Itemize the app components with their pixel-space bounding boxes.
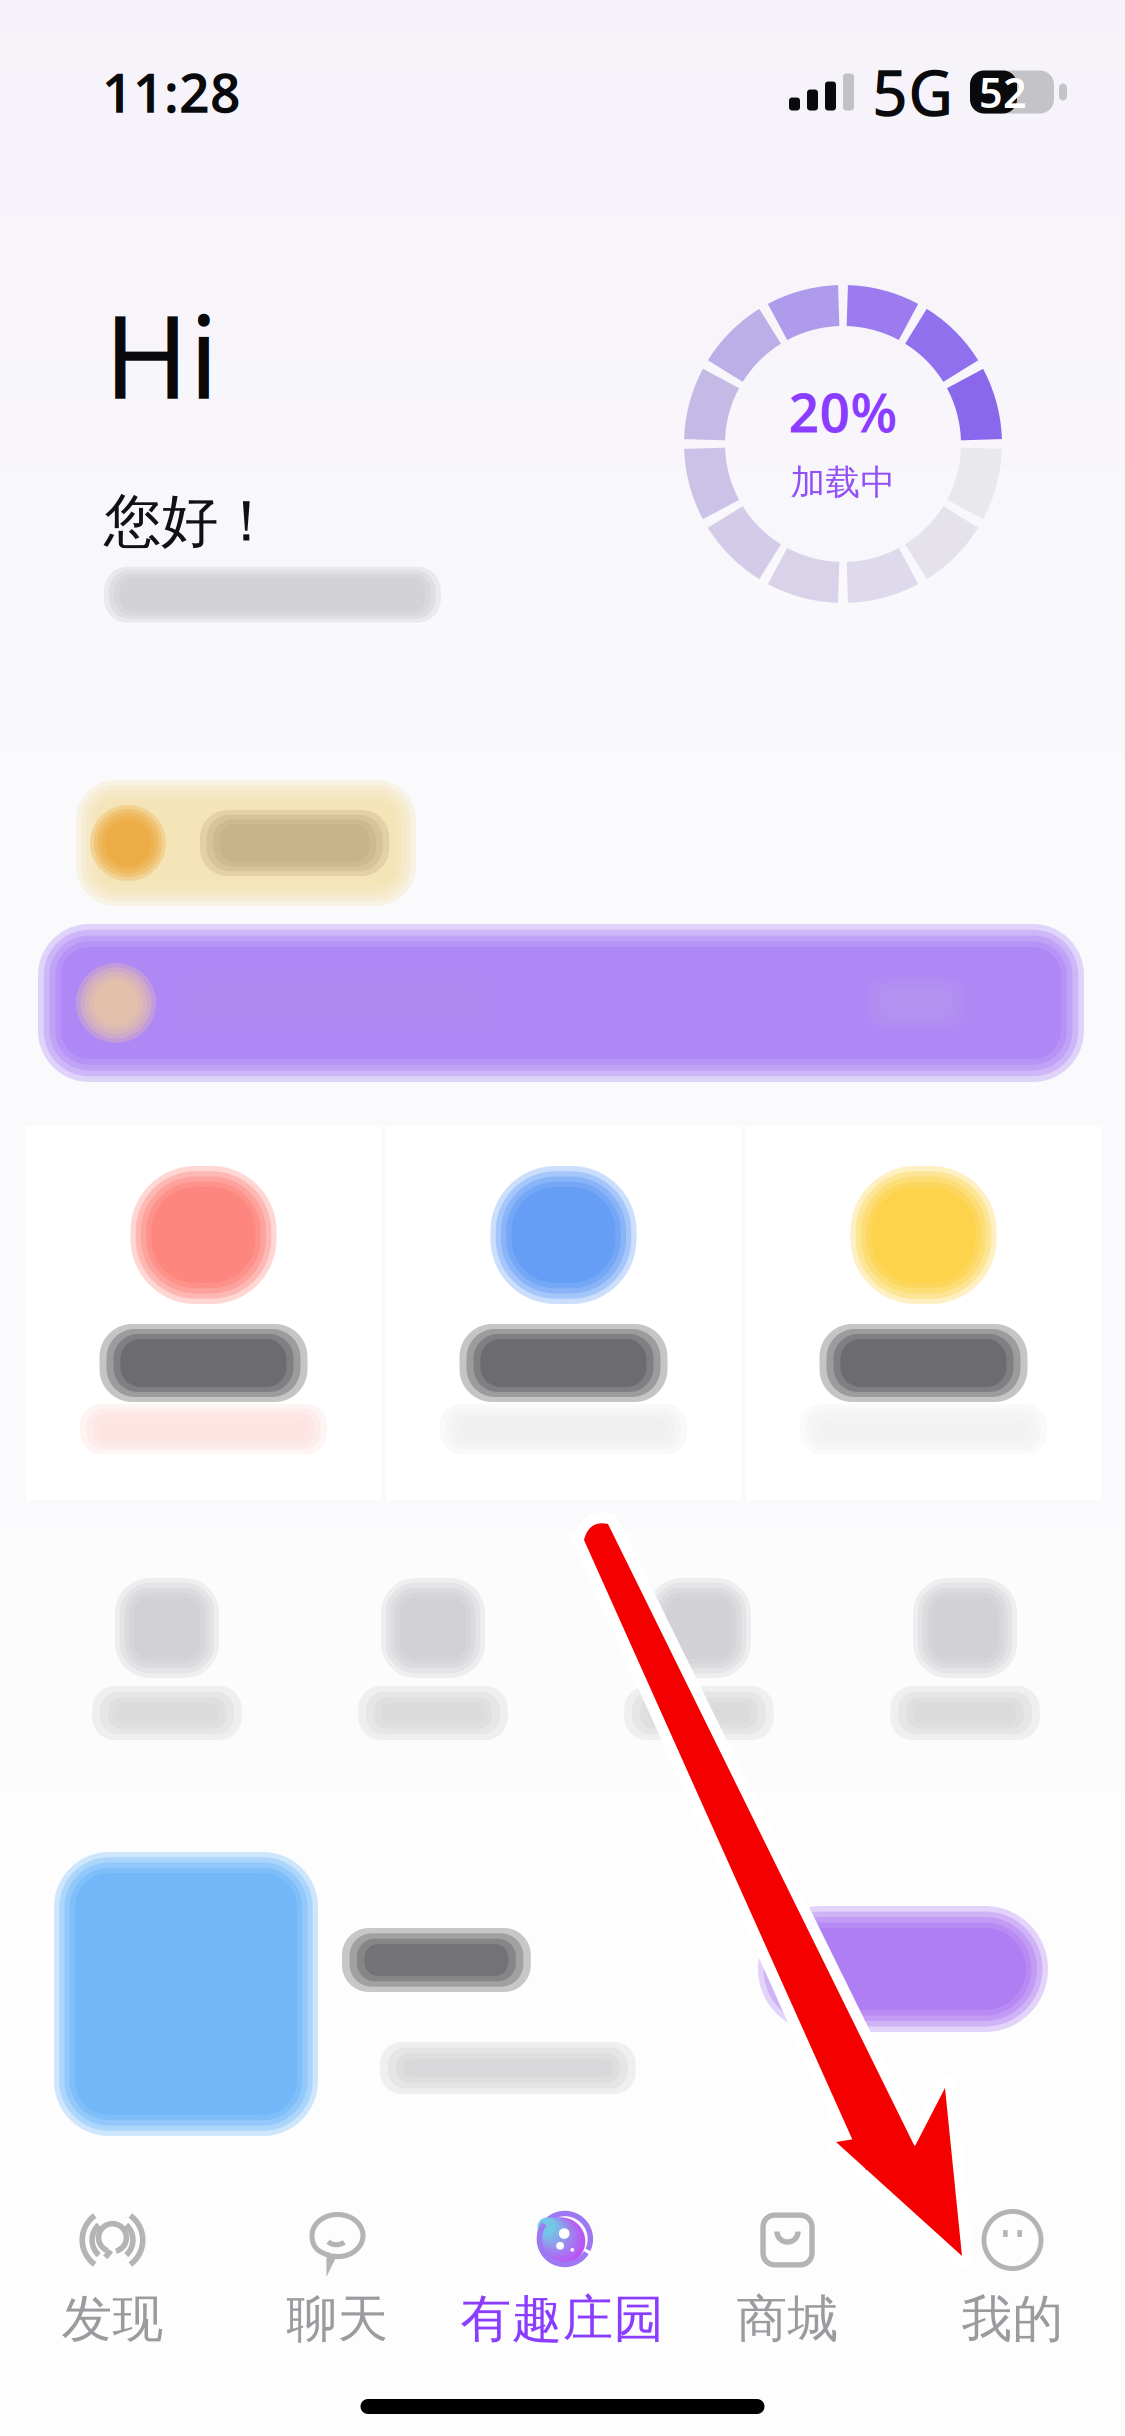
button[interactable] — [746, 1126, 1101, 1500]
button[interactable]: 聊天 — [225, 2206, 450, 2350]
button[interactable] — [832, 1578, 1098, 1740]
button[interactable]: 有趣庄园 — [450, 2206, 675, 2350]
button[interactable]: 发现 — [0, 2206, 225, 2350]
staticText: 5G — [872, 50, 954, 134]
button[interactable]: 商城 — [675, 2206, 900, 2350]
button[interactable] — [26, 1126, 381, 1500]
button[interactable] — [386, 1126, 741, 1500]
staticText: 11:28 — [102, 57, 241, 127]
button[interactable] — [300, 1578, 566, 1740]
button[interactable] — [34, 1578, 300, 1740]
button[interactable] — [566, 1578, 832, 1740]
staticText: 您好！ — [104, 486, 275, 557]
button[interactable] — [38, 924, 1084, 1082]
staticText: 商城 — [736, 2288, 838, 2350]
staticText: 加载中 — [790, 461, 895, 504]
staticText: 52 — [979, 65, 1027, 119]
staticText: Hi — [104, 278, 219, 430]
staticText: 我的 — [961, 2288, 1063, 2350]
staticText: 发现 — [61, 2288, 163, 2350]
staticText: 20% — [788, 376, 897, 447]
staticText: 有趣庄园 — [460, 2288, 664, 2350]
button[interactable] — [758, 1906, 1048, 2032]
staticText: 聊天 — [286, 2288, 388, 2350]
button[interactable]: 我的 — [900, 2206, 1125, 2350]
